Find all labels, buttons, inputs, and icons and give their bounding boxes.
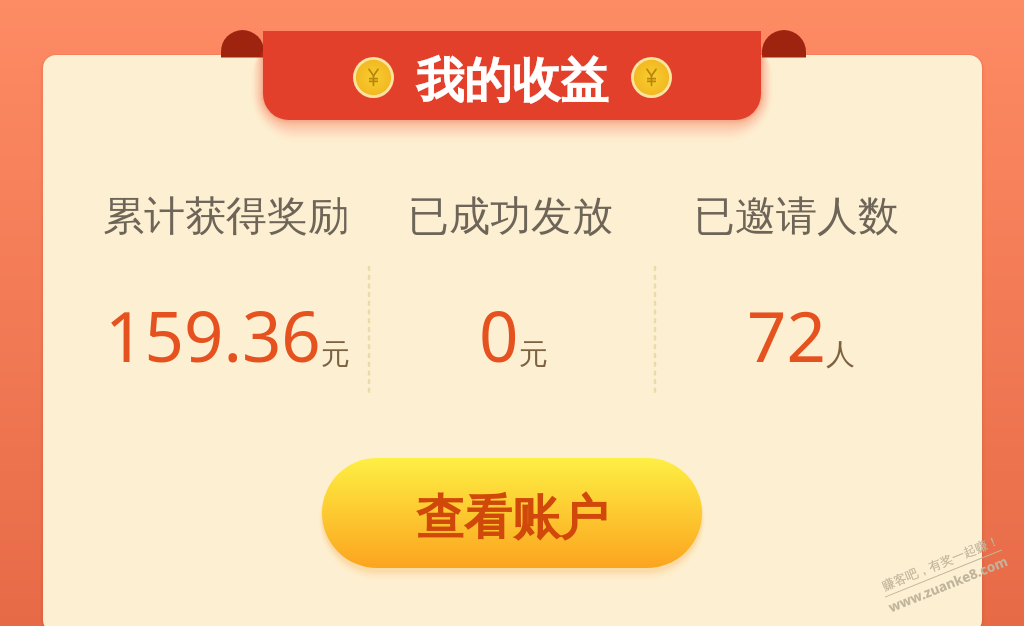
staticText: 已邀请人数	[694, 191, 899, 243]
staticText: 赚客吧，有奖一起赚！	[880, 532, 1002, 594]
button[interactable]: 已邀请人数	[655, 180, 965, 380]
staticText: 查看账户	[416, 488, 608, 548]
staticText: 人	[826, 336, 855, 373]
button[interactable]: 查看账户	[322, 458, 702, 568]
button[interactable]: 已成功发放	[369, 180, 655, 380]
staticText: www.zuanke8.com	[886, 552, 1010, 616]
staticText: 元	[321, 336, 350, 373]
staticText: 159.36	[105, 288, 321, 382]
staticText: 72	[747, 288, 826, 382]
staticText: 我的收益	[416, 51, 608, 111]
button[interactable]: 累计获得奖励	[60, 180, 369, 380]
staticText: 元	[519, 336, 548, 373]
staticText: 累计获得奖励	[103, 191, 349, 243]
staticText: 已成功发放	[408, 191, 613, 243]
staticText: 0	[479, 288, 519, 382]
